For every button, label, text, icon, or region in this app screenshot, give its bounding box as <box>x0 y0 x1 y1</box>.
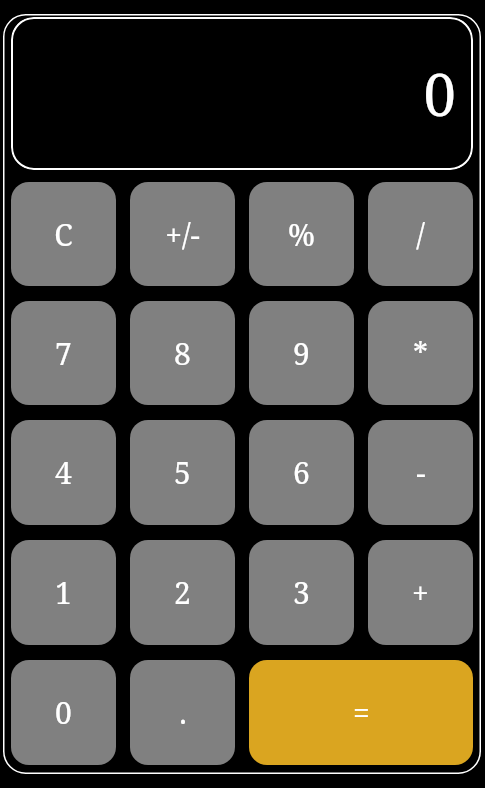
staticText: - <box>416 452 426 493</box>
staticText: 0 <box>55 692 72 733</box>
button[interactable]: C <box>11 182 116 286</box>
button[interactable]: 9 <box>249 301 354 405</box>
button[interactable]: 0 <box>11 660 116 765</box>
button[interactable]: . <box>130 660 235 765</box>
button[interactable]: * <box>368 301 473 405</box>
button[interactable]: % <box>249 182 354 286</box>
button[interactable]: 6 <box>249 420 354 525</box>
staticText: +/- <box>165 214 200 255</box>
button[interactable]: +/- <box>130 182 235 286</box>
staticText: 6 <box>293 452 310 493</box>
button[interactable]: 7 <box>11 301 116 405</box>
button[interactable]: Equals <box>249 660 473 765</box>
button[interactable]: + <box>368 540 473 645</box>
button[interactable]: 2 <box>130 540 235 645</box>
staticText: 4 <box>55 452 72 493</box>
staticText: = <box>353 692 370 733</box>
button[interactable]: 5 <box>130 420 235 525</box>
button[interactable]: 8 <box>130 301 235 405</box>
button[interactable]: 3 <box>249 540 354 645</box>
staticText: + <box>412 572 429 613</box>
staticText: % <box>288 214 315 255</box>
staticText: * <box>413 333 428 374</box>
button[interactable]: / <box>368 182 473 286</box>
staticText: 9 <box>293 333 310 374</box>
staticText: 3 <box>293 572 310 613</box>
button[interactable]: 4 <box>11 420 116 525</box>
button[interactable]: 1 <box>11 540 116 645</box>
staticText: C <box>54 214 73 255</box>
staticText: 7 <box>55 333 72 374</box>
staticText: / <box>416 214 425 255</box>
button[interactable]: - <box>368 420 473 525</box>
staticText: 0 <box>423 54 456 133</box>
staticText: 5 <box>174 452 191 493</box>
staticText: 1 <box>55 572 72 613</box>
staticText: 2 <box>174 572 191 613</box>
staticText: 8 <box>174 333 191 374</box>
staticText: . <box>179 692 187 733</box>
